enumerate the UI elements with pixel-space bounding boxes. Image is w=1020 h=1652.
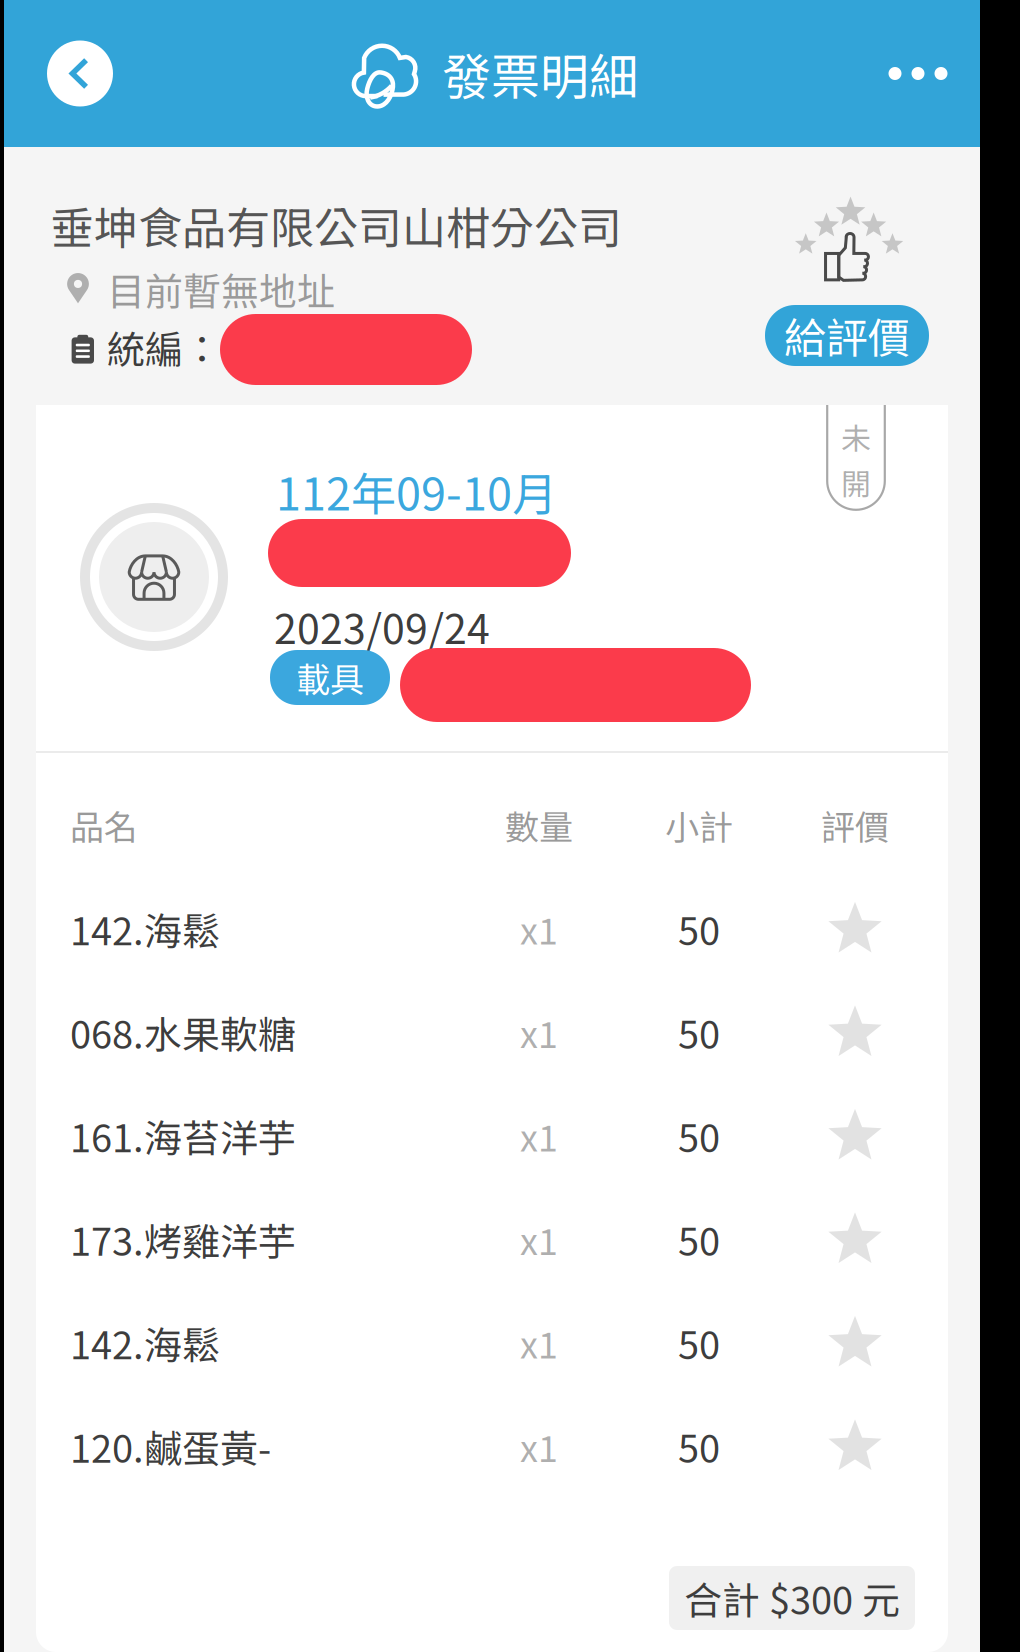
staticText: 評價: [821, 800, 889, 850]
staticText: 50: [678, 1005, 720, 1060]
staticText: 50: [678, 1108, 720, 1163]
staticText: x1: [520, 1006, 558, 1058]
staticText: 50: [678, 901, 720, 956]
staticText: 垂坤食品有限公司山柑分公司: [50, 193, 622, 257]
staticText: x1: [520, 1317, 558, 1369]
staticText: 品名: [70, 800, 138, 850]
staticText: 數量: [505, 800, 573, 850]
staticText: 50: [678, 1315, 720, 1370]
staticText: x1: [520, 1110, 558, 1162]
staticText: 統編：: [107, 319, 221, 374]
staticText: 173.烤雞洋芋: [70, 1212, 296, 1267]
staticText: 目前暫無地址: [107, 261, 335, 316]
staticText: 未: [841, 415, 871, 458]
button[interactable]: Back: [30, 0, 130, 147]
staticText: 161.海苔洋芋: [70, 1108, 296, 1163]
staticText: 合計 $300 元: [684, 1570, 900, 1625]
staticText: 142.海鬆: [70, 1315, 220, 1370]
button[interactable]: 給評價: [765, 305, 929, 366]
staticText: 2023/09/24: [274, 596, 490, 656]
staticText: 開: [841, 460, 871, 504]
staticText: 142.海鬆: [70, 901, 220, 956]
staticText: 068.水果軟糖: [70, 1005, 296, 1060]
staticText: 發票明細: [442, 38, 638, 109]
staticText: 小計: [665, 800, 733, 850]
staticText: 給評價: [784, 305, 910, 366]
staticText: 120.鹹蛋黃-: [70, 1419, 271, 1474]
staticText: x1: [520, 903, 558, 955]
staticText: x1: [520, 1420, 558, 1472]
staticText: 50: [678, 1419, 720, 1474]
staticText: 50: [678, 1212, 720, 1267]
button[interactable]: More options: [856, 0, 980, 147]
staticText: x1: [520, 1213, 558, 1265]
staticText: 載具: [296, 653, 364, 702]
staticText: 112年09-10月: [276, 458, 557, 524]
